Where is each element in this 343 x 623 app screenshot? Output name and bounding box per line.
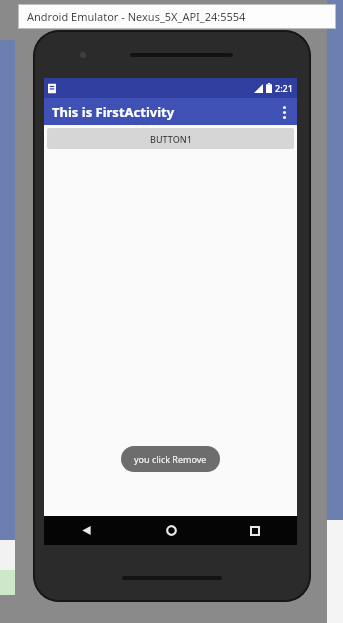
staticText: This is FirstActivity	[52, 103, 175, 121]
button[interactable]: More options	[271, 99, 297, 125]
staticText: you click Remove	[134, 453, 207, 465]
button[interactable]: Recent apps	[213, 516, 297, 545]
staticText: 2:21	[275, 82, 293, 94]
staticText: BUTTON1	[150, 133, 192, 145]
button[interactable]: Home	[129, 516, 213, 545]
button[interactable]: BUTTON1	[47, 128, 294, 149]
button[interactable]: Back	[44, 516, 129, 545]
staticText: Android Emulator - Nexus_5X_API_24:5554	[27, 9, 246, 24]
